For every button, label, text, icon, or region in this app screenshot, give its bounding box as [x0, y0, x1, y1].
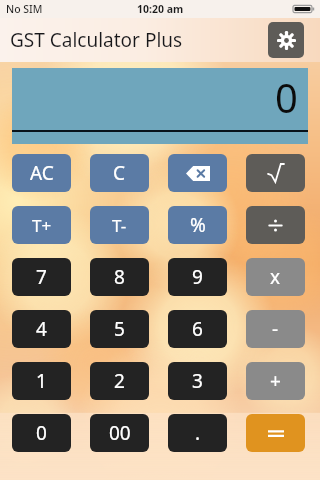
- button[interactable]: 00: [90, 414, 149, 452]
- button[interactable]: AC: [12, 154, 71, 192]
- staticText: T+: [32, 214, 52, 237]
- staticText: C: [113, 160, 126, 186]
- button[interactable]: 0: [12, 414, 71, 452]
- button[interactable]: T-: [90, 206, 149, 244]
- button[interactable]: 8: [90, 258, 149, 296]
- button[interactable]: T+: [12, 206, 71, 244]
- button[interactable]: x: [246, 258, 305, 296]
- staticText: 5: [114, 316, 125, 342]
- staticText: 1: [36, 368, 47, 394]
- staticText: 0: [275, 70, 298, 124]
- button[interactable]: Equals: [246, 414, 305, 452]
- staticText: 8: [114, 264, 125, 290]
- button[interactable]: C: [90, 154, 149, 192]
- button[interactable]: Backspace: [168, 154, 227, 192]
- button[interactable]: 5: [90, 310, 149, 348]
- button[interactable]: %: [168, 206, 227, 244]
- button[interactable]: Divide: [246, 206, 305, 244]
- button[interactable]: 2: [90, 362, 149, 400]
- staticText: 2: [114, 368, 125, 394]
- button[interactable]: 4: [12, 310, 71, 348]
- staticText: 6: [192, 316, 203, 342]
- staticText: 3: [192, 368, 203, 394]
- staticText: +: [270, 368, 281, 394]
- staticText: .: [195, 420, 201, 446]
- button[interactable]: 6: [168, 310, 227, 348]
- button[interactable]: 9: [168, 258, 227, 296]
- staticText: 0: [36, 420, 47, 446]
- staticText: AC: [30, 160, 54, 186]
- staticText: 10:20 am: [137, 2, 184, 16]
- staticText: 4: [36, 316, 47, 342]
- staticText: x: [270, 264, 281, 290]
- staticText: GST Calculator Plus: [10, 27, 183, 53]
- staticText: No SIM: [6, 2, 43, 16]
- button[interactable]: 3: [168, 362, 227, 400]
- staticText: 9: [192, 264, 203, 290]
- button[interactable]: Square root: [246, 154, 305, 192]
- staticText: 7: [36, 264, 47, 290]
- button[interactable]: 7: [12, 258, 71, 296]
- button[interactable]: 1: [12, 362, 71, 400]
- staticText: %: [190, 212, 206, 238]
- staticText: -: [272, 316, 279, 342]
- button[interactable]: .: [168, 414, 227, 452]
- button[interactable]: Settings: [268, 22, 304, 58]
- staticText: 00: [109, 420, 131, 446]
- staticText: T-: [112, 214, 127, 237]
- button[interactable]: -: [246, 310, 305, 348]
- button[interactable]: +: [246, 362, 305, 400]
